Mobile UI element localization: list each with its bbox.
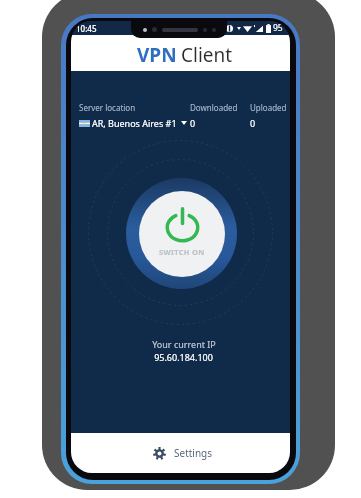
button[interactable]: Switch on VPN (126, 178, 237, 289)
staticText: 95.60.184.100 (154, 351, 213, 363)
staticText: Downloaded (190, 102, 238, 113)
staticText: Client (181, 42, 233, 68)
staticText: 95 (273, 22, 283, 34)
staticText: 10:45 (76, 23, 97, 34)
staticText: SWITCH ON (159, 247, 205, 257)
staticText: AR, Buenos Aires #1 (92, 117, 177, 129)
staticText: Uploaded (250, 102, 287, 113)
staticText: Settings (174, 446, 213, 460)
staticText: Server location (79, 102, 136, 113)
staticText: 0 (190, 117, 196, 129)
button[interactable]: Settings (71, 433, 290, 473)
staticText: Your current IP (152, 338, 216, 350)
button[interactable]: AR, Buenos Aires #1 (79, 117, 187, 129)
staticText: 0 (250, 117, 256, 129)
staticText: VPN (137, 42, 177, 68)
